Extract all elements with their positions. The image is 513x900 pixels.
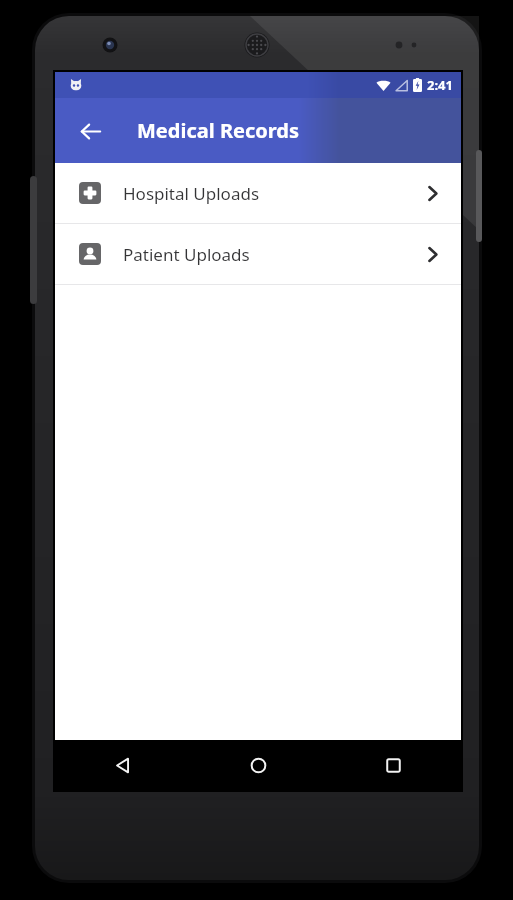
staticText: Patient Uploads	[123, 243, 250, 266]
staticText: 2:41	[427, 76, 453, 94]
staticText: Hospital Uploads	[123, 182, 260, 205]
button[interactable]: Back	[55, 740, 191, 790]
staticText: Medical Records	[137, 117, 299, 144]
button[interactable]: Back	[69, 110, 111, 152]
button[interactable]: Hospital Uploads	[55, 163, 461, 223]
button[interactable]: Recent apps	[326, 740, 461, 790]
button[interactable]: Home	[191, 740, 326, 790]
button[interactable]: Patient Uploads	[55, 224, 461, 284]
